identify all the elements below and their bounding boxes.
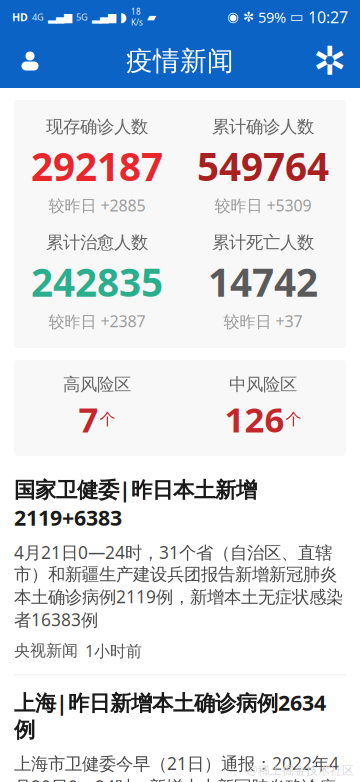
- staticText: ✲: [313, 38, 347, 84]
- staticText: 59%: [258, 7, 286, 27]
- staticText: ▰: [147, 10, 156, 24]
- staticText: 累计治愈人数: [46, 232, 148, 253]
- button[interactable]: 个人中心: [8, 39, 52, 83]
- staticText: ▂▄▆: [48, 11, 72, 23]
- button[interactable]: 设置: [308, 39, 352, 83]
- staticText: 个: [99, 409, 115, 429]
- staticText: 较昨日 +37: [223, 310, 302, 332]
- staticText: 549764: [197, 140, 329, 192]
- staticText: 较昨日 +5309: [214, 195, 311, 216]
- staticText: ◉: [227, 9, 239, 24]
- staticText: 个: [285, 409, 301, 429]
- button[interactable]: 上海|昨日新增本土确诊病例2634例: [0, 675, 360, 782]
- staticText: 126: [224, 396, 284, 442]
- staticText: 央视新闻: [14, 641, 78, 661]
- staticText: 上海|昨日新增本土确诊病例2634例: [14, 688, 326, 743]
- staticText: 较昨日 +2387: [48, 310, 145, 332]
- staticText: 292187: [31, 140, 163, 192]
- staticText: 242835: [31, 256, 163, 307]
- staticText: 14742: [208, 256, 318, 307]
- staticText: 中风险区: [229, 374, 297, 395]
- staticText: ▂▄▆: [92, 11, 116, 23]
- staticText: 较昨日 +2885: [48, 195, 145, 216]
- staticText: ✼: [243, 9, 254, 24]
- staticText: 上海市卫健委今早（21日）通报：2022年4月20日0—24时，新增本土新冠肺炎…: [14, 752, 342, 782]
- staticText: 1小时前: [85, 640, 142, 661]
- staticText: 国家卫健委|昨日本土新增2119+6383: [14, 475, 257, 532]
- staticText: HD: [12, 10, 28, 24]
- staticText: ◗: [120, 9, 127, 24]
- staticText: 高风险区: [63, 374, 131, 395]
- staticText: 累计死亡人数: [212, 232, 314, 253]
- staticText: 4月21日0—24时，31个省（自治区、直辖市）和新疆生产建设兵团报告新增新冠肺…: [14, 541, 343, 631]
- staticText: 7: [78, 396, 98, 442]
- staticText: 现存确诊人数: [46, 116, 148, 137]
- staticText: 4G: [32, 11, 44, 23]
- staticText: ▭: [290, 9, 304, 25]
- button[interactable]: 国家卫健委|昨日本土新增2119+6383: [0, 462, 360, 675]
- staticText: @稀土掘金技术社区: [247, 762, 354, 778]
- staticText: 10:27: [308, 6, 348, 28]
- staticText: 5G: [76, 11, 88, 23]
- staticText: 18 K/s: [131, 6, 143, 28]
- staticText: 累计确诊人数: [212, 116, 314, 137]
- staticText: 疫情新闻: [126, 45, 234, 77]
